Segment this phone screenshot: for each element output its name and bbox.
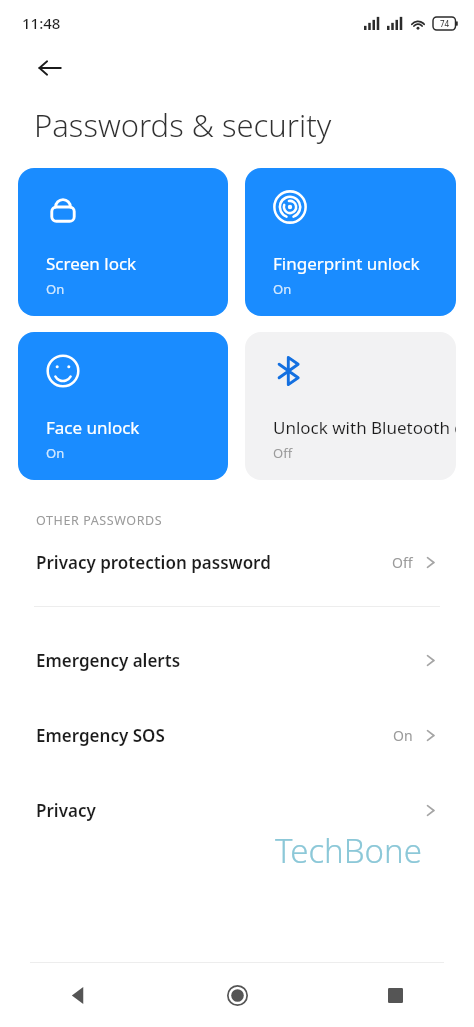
staticText: On (273, 280, 292, 298)
button[interactable]: Emergency SOS (0, 718, 474, 753)
staticText: Emergency SOS (36, 724, 165, 747)
staticText: Unlock with Bluetooth devices (273, 416, 456, 439)
staticText: Privacy protection password (36, 551, 271, 574)
button[interactable]: Recent apps (373, 973, 417, 1017)
staticText: On (46, 444, 65, 462)
button[interactable]: Emergency alerts (0, 643, 474, 678)
button[interactable]: Back (57, 973, 101, 1017)
staticText: 74 (440, 18, 450, 29)
staticText: Passwords & security (34, 104, 332, 146)
button[interactable]: Back (28, 46, 72, 90)
button[interactable]: Face unlock (18, 332, 228, 480)
staticText: On (46, 280, 65, 298)
button[interactable]: Home (215, 973, 259, 1017)
button[interactable]: Privacy protection password (0, 545, 474, 580)
button[interactable]: Unlock with Bluetooth devices (245, 332, 456, 480)
staticText: Emergency alerts (36, 649, 181, 672)
button[interactable]: Fingerprint unlock (245, 168, 456, 316)
staticText: On (393, 726, 413, 745)
staticText: Face unlock (46, 416, 140, 439)
staticText: OTHER PASSWORDS (36, 512, 163, 529)
staticText: Privacy (36, 799, 96, 822)
staticText: Off (273, 444, 293, 462)
staticText: Off (392, 553, 413, 572)
button[interactable]: Screen lock (18, 168, 228, 316)
button[interactable]: Privacy (0, 793, 474, 828)
staticText: Fingerprint unlock (273, 252, 420, 275)
staticText: TechBone (275, 828, 422, 873)
staticText: Screen lock (46, 252, 137, 275)
staticText: 11:48 (22, 13, 61, 33)
